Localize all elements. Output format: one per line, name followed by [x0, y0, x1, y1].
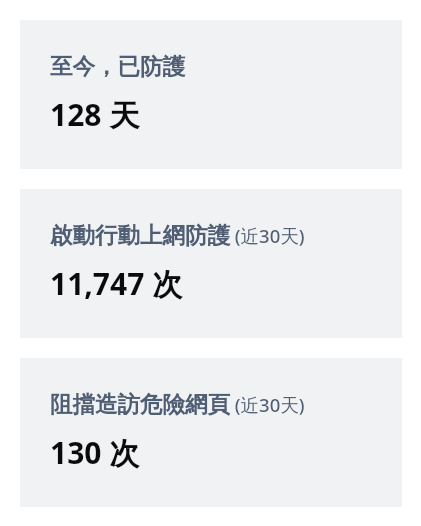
- button[interactable]: 至今，已防護: [20, 20, 402, 169]
- staticText: 130 次: [50, 432, 140, 473]
- staticText: 阻擋造訪危險網頁 (近30天): [50, 390, 305, 418]
- button[interactable]: 啟動行動上網防護 (近30天): [20, 189, 402, 338]
- staticText: 啟動行動上網防護 (近30天): [50, 221, 305, 249]
- staticText: 至今，已防護: [50, 52, 185, 80]
- staticText: 11,747 次: [50, 263, 183, 304]
- button[interactable]: 阻擋造訪危險網頁 (近30天): [20, 358, 402, 507]
- staticText: 128 天: [50, 94, 140, 135]
